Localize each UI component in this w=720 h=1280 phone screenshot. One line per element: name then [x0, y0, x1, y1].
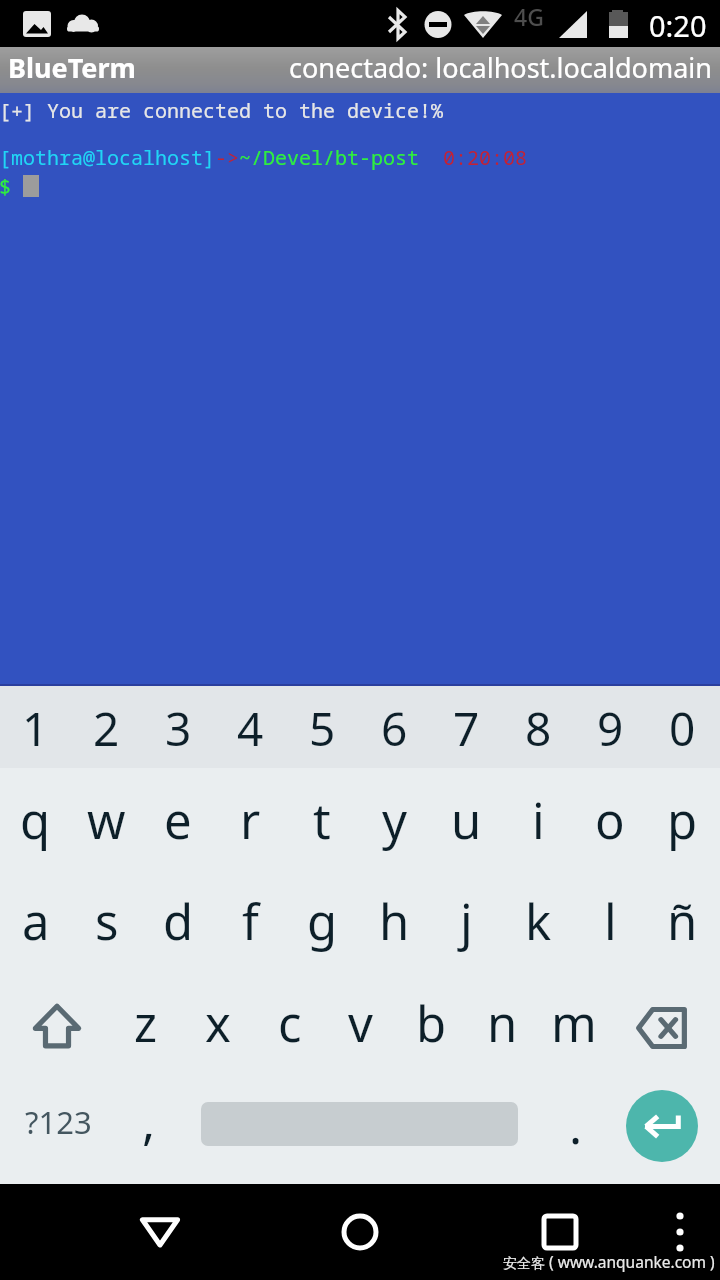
staticText: 4G: [514, 1, 544, 32]
button[interactable]: 3: [142, 686, 214, 768]
staticText: i: [532, 787, 545, 854]
staticText: [+] You are connected to the device!%: [0, 97, 443, 124]
button[interactable]: j: [430, 869, 502, 969]
button[interactable]: y: [358, 768, 430, 869]
staticText: d: [163, 888, 194, 955]
staticText: s: [95, 888, 119, 955]
staticText: h: [379, 888, 410, 955]
button[interactable]: 8: [502, 686, 574, 768]
button[interactable]: Space: [200, 1071, 520, 1182]
button[interactable]: a: [0, 869, 71, 969]
button[interactable]: 6: [358, 686, 430, 768]
staticText: p: [667, 787, 698, 854]
button[interactable]: Recents: [510, 1184, 610, 1280]
staticText: 3: [165, 697, 192, 760]
button[interactable]: g: [286, 869, 358, 969]
staticText: conectado: localhost.localdomain: [289, 49, 712, 86]
button[interactable]: 4: [214, 686, 286, 768]
button[interactable]: u: [430, 768, 502, 869]
staticText: 0: [669, 697, 696, 760]
staticText: z: [134, 990, 158, 1057]
button[interactable]: 1: [0, 686, 71, 768]
button[interactable]: c: [254, 969, 325, 1071]
staticText: 1: [22, 697, 49, 760]
button[interactable]: w: [71, 768, 142, 869]
staticText: 9: [597, 697, 624, 760]
staticText: k: [525, 888, 552, 955]
button[interactable]: e: [142, 768, 214, 869]
staticText: n: [487, 990, 518, 1057]
staticText: v: [348, 990, 373, 1057]
staticText: 安全客 ( www.anquanke.com ): [503, 1251, 715, 1272]
button[interactable]: 9: [574, 686, 646, 768]
button[interactable]: .: [520, 1071, 606, 1182]
button[interactable]: t: [286, 768, 358, 869]
staticText: y: [382, 787, 407, 854]
staticText: [mothra@localhost]->~/Devel/bt-post 0:20…: [0, 144, 527, 171]
staticText: 4: [237, 697, 264, 760]
staticText: w: [87, 787, 126, 854]
button[interactable]: x: [182, 969, 254, 1071]
button[interactable]: BlueTerm: [0, 47, 720, 93]
button[interactable]: q: [0, 768, 71, 869]
staticText: ?123: [25, 1101, 92, 1143]
button[interactable]: 2: [71, 686, 142, 768]
staticText: u: [451, 787, 482, 854]
button[interactable]: ?123: [0, 1071, 114, 1182]
button[interactable]: 7: [430, 686, 502, 768]
button[interactable]: f: [214, 869, 286, 969]
button[interactable]: m: [538, 969, 609, 1071]
button[interactable]: Back: [110, 1184, 210, 1280]
staticText: m: [551, 990, 597, 1057]
staticText: t: [313, 787, 331, 854]
staticText: f: [242, 888, 259, 955]
button[interactable]: Home: [310, 1184, 410, 1280]
button[interactable]: h: [358, 869, 430, 969]
staticText: 7: [453, 697, 480, 760]
staticText: 0:20: [649, 6, 707, 45]
staticText: $: [0, 173, 11, 200]
staticText: 6: [381, 697, 408, 760]
button[interactable]: d: [142, 869, 214, 969]
staticText: q: [20, 787, 51, 854]
button[interactable]: r: [214, 768, 286, 869]
staticText: 2: [93, 697, 120, 760]
staticText: BlueTerm: [8, 49, 136, 86]
button[interactable]: p: [646, 768, 718, 869]
button[interactable]: Backspace: [609, 969, 720, 1071]
button[interactable]: ñ: [646, 869, 718, 969]
staticText: b: [416, 990, 447, 1057]
button[interactable]: v: [325, 969, 396, 1071]
button[interactable]: o: [574, 768, 646, 869]
button[interactable]: i: [502, 768, 574, 869]
staticText: g: [307, 888, 338, 955]
button[interactable]: s: [71, 869, 142, 969]
staticText: 8: [525, 697, 552, 760]
button[interactable]: 5: [286, 686, 358, 768]
button[interactable]: More options: [650, 1184, 710, 1280]
button[interactable]: ,: [114, 1071, 200, 1182]
staticText: 5: [309, 697, 336, 760]
staticText: j: [460, 888, 473, 955]
button[interactable]: Shift: [0, 969, 110, 1071]
button[interactable]: l: [574, 869, 646, 969]
button[interactable]: Enter: [606, 1071, 720, 1182]
staticText: ,: [142, 1088, 156, 1155]
staticText: o: [595, 787, 625, 854]
button[interactable]: 0: [646, 686, 718, 768]
staticText: c: [278, 990, 302, 1057]
staticText: x: [205, 990, 231, 1057]
staticText: ñ: [667, 888, 698, 955]
button[interactable]: z: [110, 969, 182, 1071]
staticText: .: [569, 1092, 583, 1159]
button[interactable]: b: [396, 969, 467, 1071]
button[interactable]: k: [502, 869, 574, 969]
staticText: e: [164, 787, 192, 854]
button[interactable]: n: [467, 969, 538, 1071]
staticText: l: [604, 888, 617, 955]
staticText: r: [240, 787, 261, 854]
staticText: a: [22, 888, 50, 955]
